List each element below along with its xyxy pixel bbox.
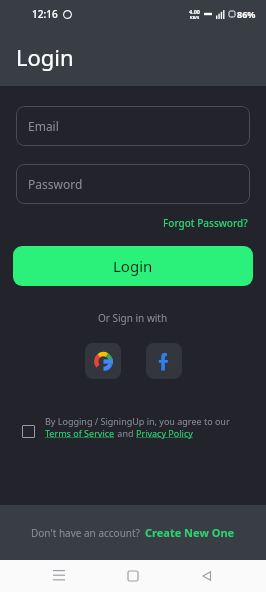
button[interactable]: Back	[192, 561, 222, 591]
button[interactable]: Home	[118, 561, 148, 591]
staticText: By Logging / SigningUp in, you agree to …	[45, 415, 230, 427]
staticText: Forgot Password?	[163, 216, 248, 230]
staticText: 4.00	[189, 8, 200, 15]
staticText: Password	[28, 176, 83, 192]
button[interactable]: Don't have an account?	[0, 505, 266, 560]
staticText: Privacy Policy	[136, 427, 193, 439]
button[interactable]: Sign in with Facebook	[146, 343, 182, 379]
staticText: Terms of Service	[45, 427, 115, 439]
staticText: Email	[28, 118, 59, 134]
staticText: Login	[16, 42, 74, 72]
staticText: Login	[113, 256, 153, 276]
button[interactable]: Sign in with Google	[85, 343, 121, 379]
button[interactable]: Recent apps	[44, 561, 74, 591]
button[interactable]: Password	[16, 164, 250, 204]
button[interactable]: Accept terms	[22, 425, 35, 438]
button[interactable]: Email	[16, 106, 250, 146]
staticText: Create New One	[145, 525, 235, 540]
staticText: 86%	[237, 8, 256, 20]
button[interactable]: Privacy Policy	[136, 427, 193, 439]
staticText: Don't have an account?	[31, 526, 140, 540]
staticText: Or Sign in with	[98, 311, 168, 325]
staticText: 12:16	[32, 7, 58, 21]
staticText: KB/S	[190, 15, 200, 20]
staticText: and	[115, 427, 136, 439]
button[interactable]: Login	[13, 246, 253, 286]
button[interactable]: Forgot Password?	[159, 212, 252, 234]
button[interactable]: Terms of Service	[45, 427, 115, 439]
